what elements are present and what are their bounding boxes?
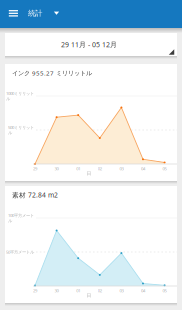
button[interactable]: 29 11月 - 05 12月: [5, 33, 177, 56]
staticText: 素材 72.84 m2: [12, 190, 58, 200]
staticText: インク 955.27 ミリリットル: [12, 69, 92, 77]
staticText: 03: [119, 166, 123, 171]
staticText: 30: [55, 166, 59, 171]
staticText: 1000ミリリットル: [6, 90, 34, 102]
staticText: 29: [33, 288, 37, 293]
staticText: 500ミリリットル: [8, 124, 34, 136]
staticText: 02: [98, 166, 102, 171]
staticText: 統計: [28, 8, 42, 18]
button[interactable]: Menu: [3, 2, 23, 24]
staticText: 05: [163, 166, 167, 171]
staticText: 01: [76, 166, 80, 171]
staticText: 100平方メートル: [8, 212, 34, 224]
button[interactable]: Change statistic: [50, 2, 63, 24]
staticText: 01: [76, 288, 80, 293]
staticText: 05: [163, 288, 167, 293]
staticText: 日: [86, 170, 91, 176]
staticText: 30: [55, 288, 59, 293]
staticText: 日: [86, 292, 91, 298]
staticText: 04: [141, 288, 145, 293]
staticText: 50平方メートル: [6, 249, 34, 255]
staticText: 02: [98, 288, 102, 293]
staticText: 03: [119, 288, 123, 293]
staticText: 29 11月 - 05 12月: [61, 40, 117, 49]
staticText: 29: [33, 166, 37, 171]
staticText: 04: [141, 166, 145, 171]
